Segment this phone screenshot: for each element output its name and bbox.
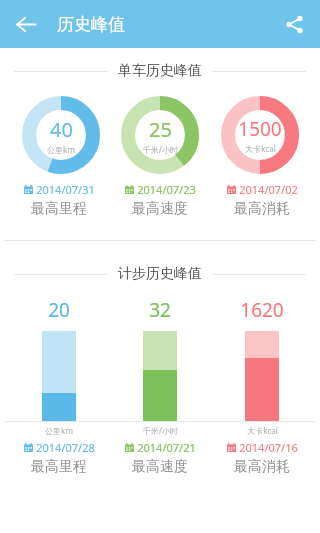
staticText: 1620	[240, 297, 284, 323]
staticText: 20	[48, 297, 70, 323]
staticText: 千米/小时	[143, 425, 178, 436]
button[interactable]: Back	[5, 3, 47, 45]
staticText: 25	[149, 116, 172, 143]
staticText: 2014/07/23	[137, 182, 196, 197]
staticText: 公里km	[45, 425, 73, 436]
staticText: 大卡kcal	[245, 143, 276, 154]
button[interactable]: 25	[121, 96, 199, 174]
button[interactable]: Share	[273, 3, 315, 45]
staticText: 千米/小时	[143, 144, 178, 155]
staticText: 最高消耗	[234, 200, 290, 218]
staticText: 大卡kcal	[247, 425, 278, 436]
button[interactable]	[245, 331, 279, 421]
staticText: 公里km	[47, 144, 75, 155]
button[interactable]: 1500	[221, 96, 299, 174]
button[interactable]: 2014/07/02	[219, 182, 305, 197]
button[interactable]: 2014/07/23	[117, 182, 203, 197]
staticText: 2014/07/28	[36, 440, 95, 455]
staticText: 2014/07/02	[239, 182, 298, 197]
staticText: 32	[149, 297, 171, 323]
button[interactable]: 2014/07/28	[16, 440, 102, 455]
staticText: 单车历史峰值	[118, 62, 202, 80]
staticText: 最高速度	[132, 200, 188, 218]
staticText: 计步历史峰值	[118, 265, 202, 283]
staticText: 历史峰值	[57, 14, 125, 35]
staticText: 2014/07/21	[137, 440, 196, 455]
staticText: 2014/07/31	[36, 182, 95, 197]
button[interactable]: 2014/07/21	[117, 440, 203, 455]
staticText: 1500	[238, 116, 282, 142]
staticText: 2014/07/16	[239, 440, 298, 455]
staticText: 最高速度	[132, 458, 188, 476]
button[interactable]: 40	[22, 96, 100, 174]
button[interactable]: 2014/07/16	[219, 440, 305, 455]
staticText: 最高消耗	[234, 458, 290, 476]
staticText: 最高里程	[31, 458, 87, 476]
button[interactable]	[143, 331, 177, 421]
button[interactable]: 2014/07/31	[16, 182, 102, 197]
staticText: 40	[50, 116, 73, 143]
staticText: 最高里程	[31, 200, 87, 218]
button[interactable]	[42, 331, 76, 421]
